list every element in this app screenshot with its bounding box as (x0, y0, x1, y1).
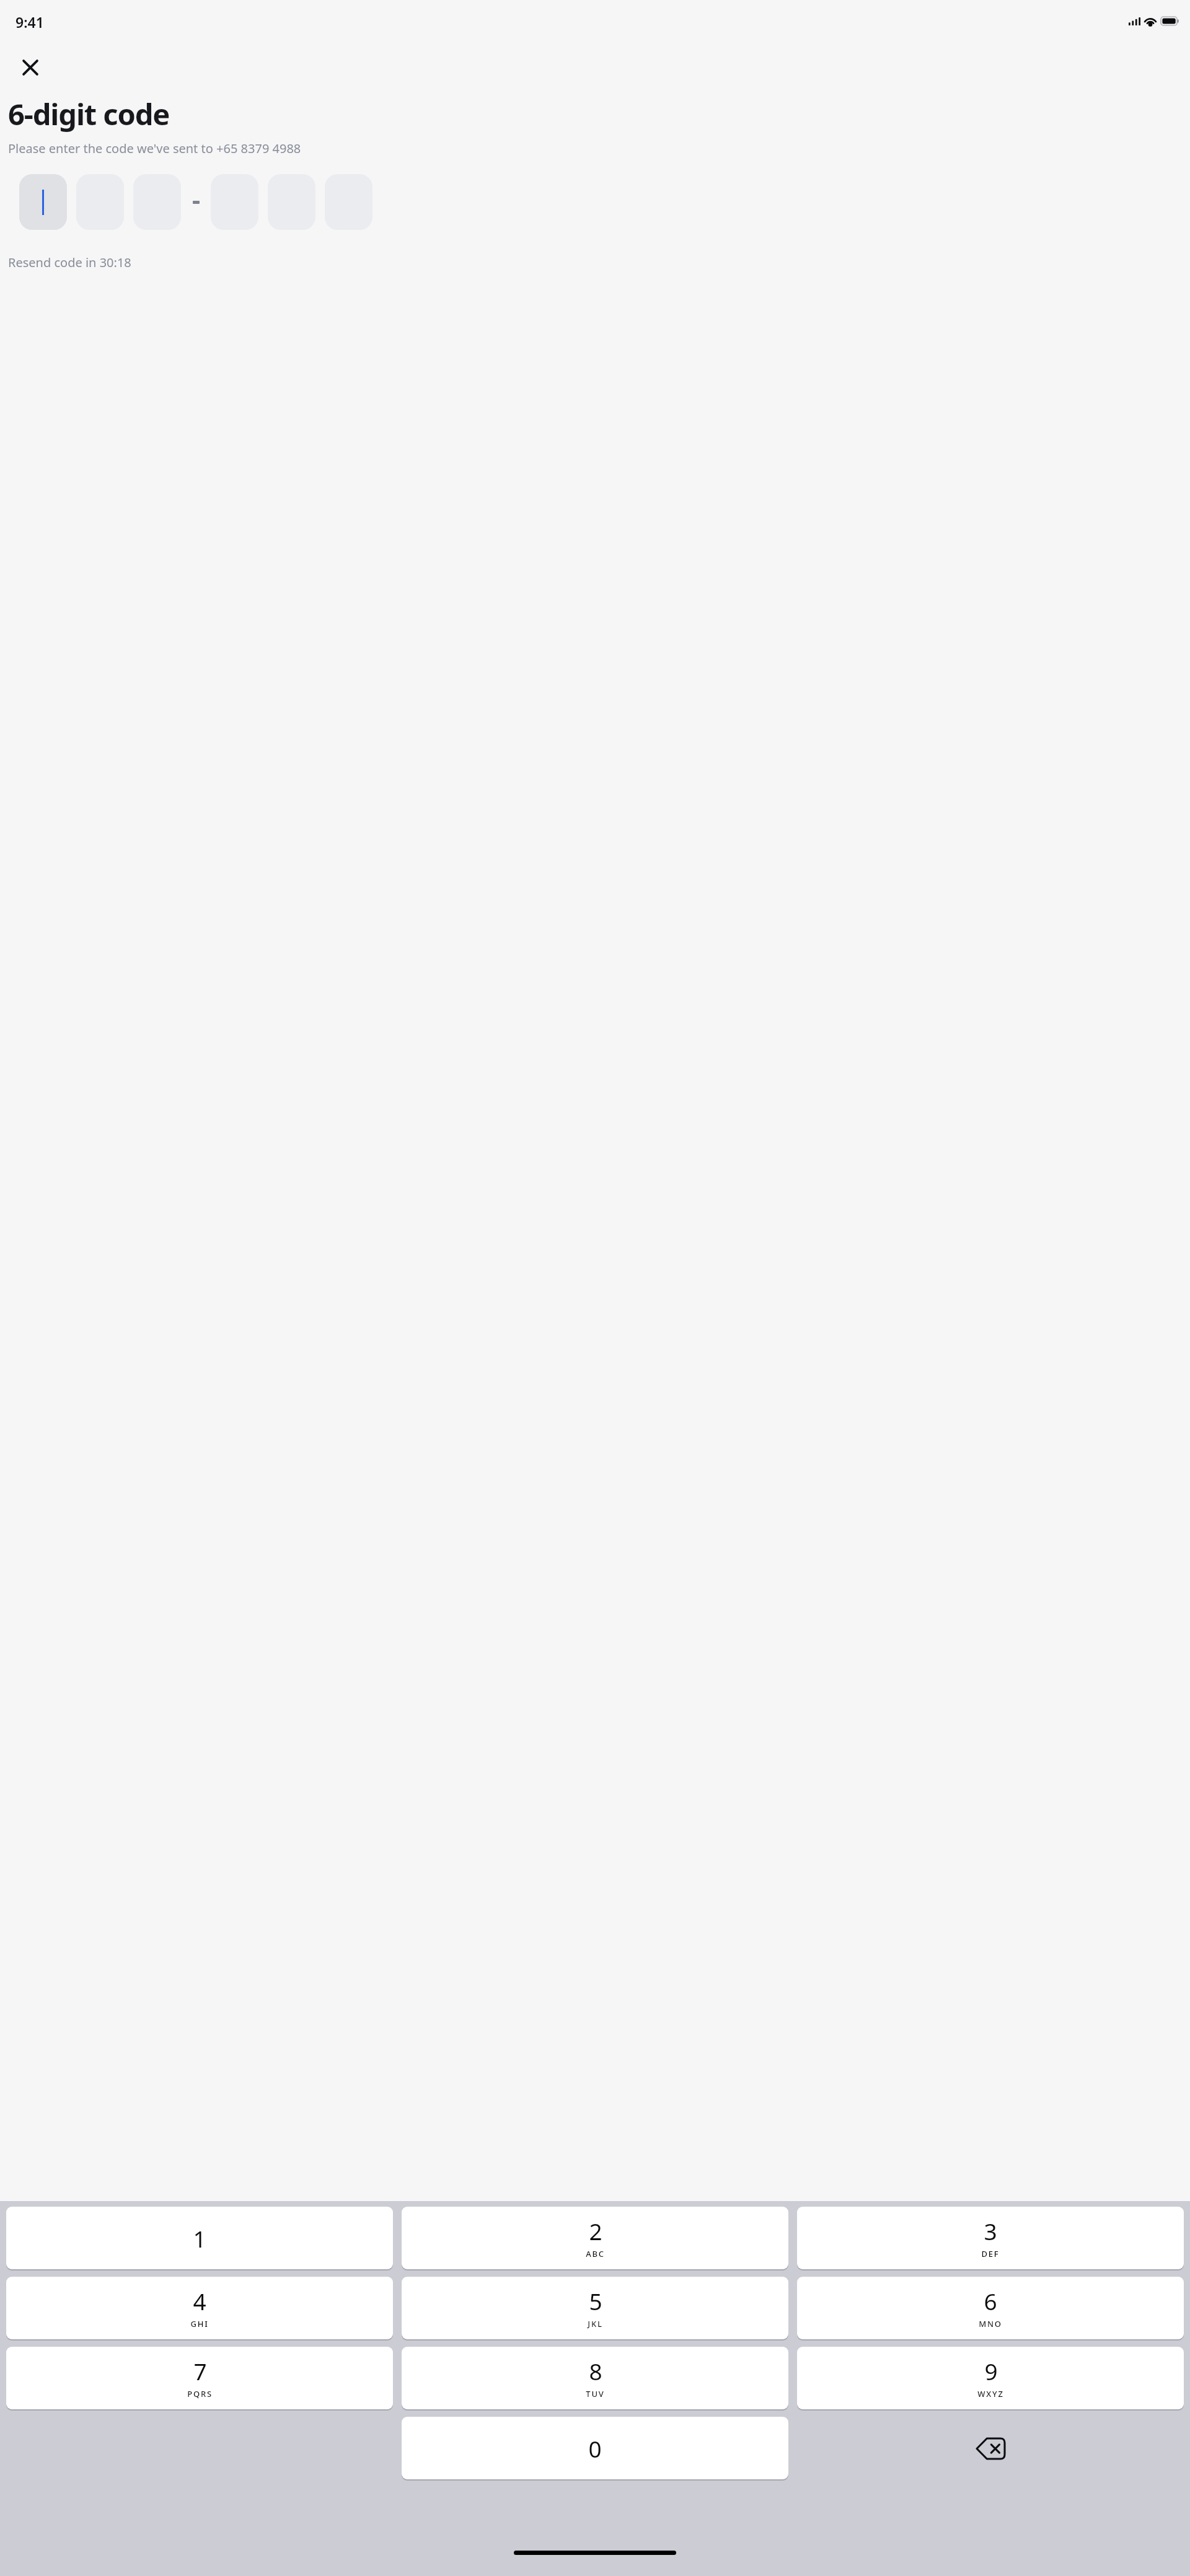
button[interactable]: Close (17, 54, 44, 81)
staticText: 8 (589, 2355, 602, 2386)
button[interactable]: 0 (402, 2417, 788, 2479)
staticText: 0 (588, 2433, 602, 2464)
staticText: PQRS (187, 2388, 213, 2399)
staticText: 4 (193, 2285, 206, 2316)
button[interactable]: 4 (6, 2277, 393, 2339)
staticText: GHI (190, 2318, 209, 2329)
button[interactable]: 8 (402, 2347, 788, 2409)
button[interactable]: 7 (6, 2347, 393, 2409)
staticText: JKL (588, 2318, 603, 2329)
button[interactable]: 5 (402, 2277, 788, 2339)
staticText: 5 (589, 2285, 602, 2316)
staticText: Please enter the code we've sent to +65 … (8, 140, 301, 157)
button[interactable]: 3 (797, 2207, 1184, 2269)
staticText: 1 (193, 2223, 206, 2254)
button[interactable]: 1 (6, 2207, 393, 2269)
button[interactable]: Resend code in 30:18 (8, 254, 131, 271)
staticText: TUV (586, 2388, 605, 2399)
staticText: WXYZ (977, 2388, 1004, 2399)
staticText: 3 (984, 2215, 997, 2246)
staticText: 7 (193, 2355, 207, 2386)
staticText: 6 (984, 2285, 997, 2316)
staticText: ABC (586, 2248, 605, 2259)
button[interactable]: 6 (797, 2277, 1184, 2339)
staticText: 9 (984, 2355, 998, 2386)
button[interactable]: 9 (797, 2347, 1184, 2409)
staticText: 6-digit code (8, 94, 170, 134)
button[interactable] (19, 174, 67, 230)
button[interactable]: Backspace (797, 2417, 1184, 2481)
staticText: DEF (981, 2248, 1000, 2259)
staticText: 2 (589, 2215, 602, 2246)
staticText: MNO (979, 2318, 1002, 2329)
staticText: 9:41 (15, 12, 44, 32)
button[interactable]: 2 (402, 2207, 788, 2269)
